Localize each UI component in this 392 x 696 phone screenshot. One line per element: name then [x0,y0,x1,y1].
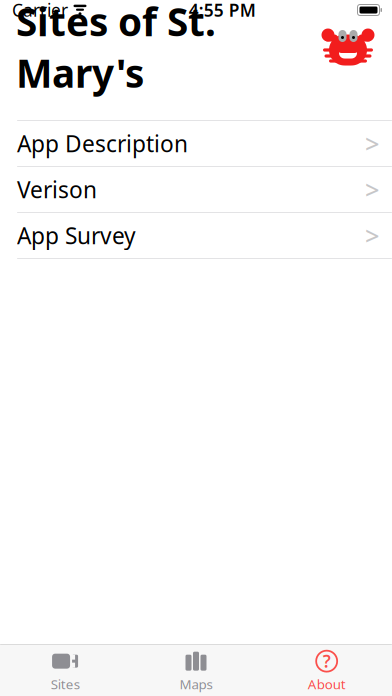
staticText: Sites [51,675,80,693]
staticText: Carrier [12,0,68,21]
staticText: App Survey [17,220,136,250]
staticText: > [365,127,379,160]
staticText: > [365,173,379,206]
staticText: ? [323,650,331,673]
button[interactable]: Maps [131,643,261,696]
staticText: App Description [17,128,188,158]
button[interactable]: App Description [0,121,392,167]
staticText: Maps [179,675,212,693]
button[interactable]: Verison [0,167,392,213]
button[interactable]: Sites [0,643,131,696]
button[interactable]: App Survey [0,213,392,259]
staticText: Sites of St. Mary's [16,0,216,98]
staticText: Verison [17,174,97,204]
button[interactable]: ? [261,643,392,696]
staticText: 4:55 PM [189,0,256,21]
staticText: About [308,675,346,693]
staticText: > [365,219,379,252]
